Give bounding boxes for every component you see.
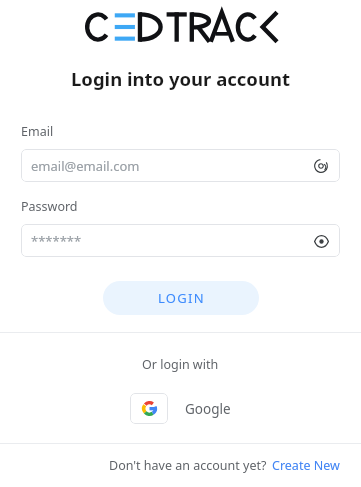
staticText: email@email.com	[31, 157, 312, 175]
staticText: LOGIN	[158, 289, 205, 307]
staticText: Login into your account	[71, 66, 290, 91]
button[interactable]: email@email.com	[21, 149, 340, 182]
staticText: Google	[185, 400, 231, 418]
other: Show password	[312, 232, 330, 250]
staticText: Don't have an account yet?	[109, 457, 267, 474]
staticText: *******	[31, 232, 312, 250]
staticText: Or login with	[142, 356, 219, 373]
staticText: Create New	[272, 457, 340, 474]
button[interactable]: Don't have an account yet?	[109, 457, 340, 474]
staticText: Email	[21, 123, 54, 140]
other: Email format hint	[312, 157, 330, 175]
button[interactable]: *******	[21, 224, 340, 257]
staticText: Password	[21, 198, 78, 215]
button[interactable]: Google	[130, 393, 231, 424]
button[interactable]: LOGIN	[103, 281, 259, 315]
